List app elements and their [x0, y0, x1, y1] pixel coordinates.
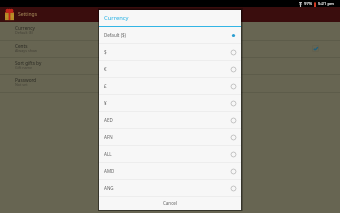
button[interactable]: £ — [99, 78, 241, 94]
staticText: 5:21 pm — [318, 1, 334, 7]
button[interactable]: Cents — [0, 41, 340, 57]
staticText: ¥ — [104, 100, 230, 106]
staticText: 97% — [304, 1, 313, 7]
staticText: Cents — [15, 43, 28, 49]
staticText: ANG — [104, 185, 230, 191]
staticText: Gift name — [15, 65, 33, 70]
button[interactable]: AED — [99, 112, 241, 128]
button[interactable]: Cancel — [99, 197, 241, 209]
staticText: AFN — [104, 134, 230, 140]
staticText: $ — [104, 49, 230, 55]
button[interactable]: ALL — [99, 146, 241, 162]
button[interactable]: AMD — [99, 163, 241, 179]
staticText: Settings — [18, 11, 38, 18]
staticText: € — [104, 66, 230, 72]
staticText: Password — [15, 77, 37, 83]
button[interactable]: € — [99, 61, 241, 77]
button[interactable]: ¥ — [99, 95, 241, 111]
staticText: Not set — [15, 82, 28, 87]
button[interactable]: Currency — [0, 23, 340, 40]
button[interactable]: Sort gifts by — [0, 58, 340, 74]
staticText: Currency — [15, 25, 35, 31]
staticText: Currency — [104, 14, 129, 22]
staticText: ALL — [104, 151, 230, 157]
button[interactable]: AFN — [99, 129, 241, 145]
staticText: Always show — [15, 48, 37, 53]
staticText: Default ($) — [15, 30, 33, 35]
staticText: AED — [104, 117, 230, 123]
button[interactable]: $ — [99, 44, 241, 60]
button[interactable]: Always show cents — [311, 44, 320, 53]
staticText: £ — [104, 83, 230, 89]
button[interactable]: Password — [0, 75, 340, 92]
button[interactable]: Default ($) — [99, 27, 241, 43]
staticText: AMD — [104, 168, 230, 174]
button[interactable]: ANG — [99, 180, 241, 196]
staticText: Default ($) — [104, 32, 230, 38]
staticText: Cancel — [163, 200, 178, 206]
other: Gifts — [5, 9, 14, 20]
staticText: Sort gifts by — [15, 60, 42, 66]
